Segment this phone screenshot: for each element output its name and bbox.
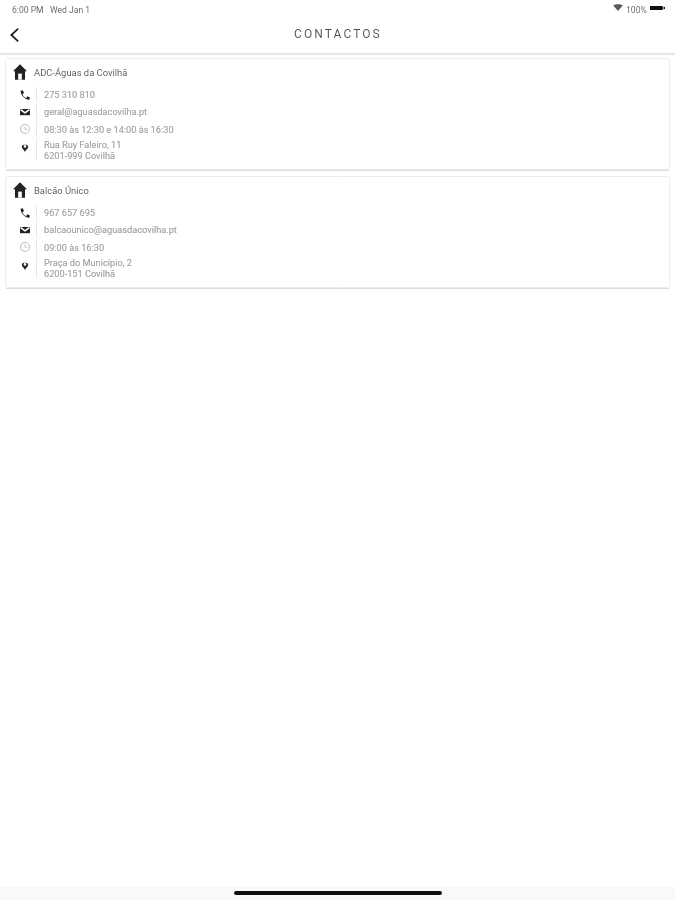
staticText: 6200-151 Covilhã	[44, 268, 116, 279]
staticText: balcaounico@aguasdacovilha.pt	[44, 224, 177, 235]
staticText: 6:00 PM	[12, 5, 44, 15]
button[interactable]: Balcão Único	[5, 176, 670, 288]
staticText: 967 657 695	[44, 207, 96, 218]
staticText: Rua Ruy Faleiro, 11	[44, 139, 122, 150]
button[interactable]: 967 657 695	[5, 204, 670, 221]
button[interactable]: Back	[0, 20, 29, 50]
button[interactable]: balcaounico@aguasdacovilha.pt	[5, 221, 670, 238]
staticText: CONTACTOS	[294, 27, 382, 41]
staticText: 08:30 às 12:30 e 14:00 às 16:30	[44, 124, 174, 135]
staticText: 6201-999 Covilhã	[44, 150, 116, 161]
staticText: geral@aguasdacovilha.pt	[44, 106, 148, 117]
staticText: Wed Jan 1	[50, 5, 91, 15]
button[interactable]: 08:30 às 12:30 e 14:00 às 16:30	[5, 120, 670, 138]
button[interactable]: geral@aguasdacovilha.pt	[5, 103, 670, 120]
button[interactable]: ADC-Águas da Covilhã	[5, 58, 670, 170]
staticText: Balcão Único	[34, 185, 89, 196]
staticText: 100%	[626, 5, 647, 15]
staticText: 275 310 810	[44, 89, 96, 100]
button[interactable]: Rua Ruy Faleiro, 11	[5, 138, 670, 161]
staticText: 09:00 às 16:30	[44, 242, 105, 253]
staticText: Praça do Município, 2	[44, 257, 132, 268]
button[interactable]: Praça do Município, 2	[5, 256, 670, 279]
button[interactable]: 09:00 às 16:30	[5, 238, 670, 256]
button[interactable]: 275 310 810	[5, 86, 670, 103]
staticText: ADC-Águas da Covilhã	[34, 67, 128, 78]
